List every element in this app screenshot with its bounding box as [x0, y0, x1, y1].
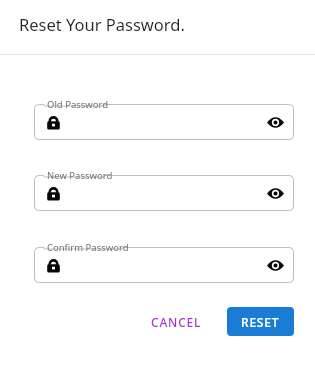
button[interactable]: New Password [34, 175, 294, 211]
button[interactable]: Toggle password visibility [264, 182, 286, 204]
staticText: Reset Your Password. [19, 13, 185, 35]
staticText: New Password [47, 169, 113, 182]
button[interactable]: Toggle password visibility [264, 254, 286, 276]
button[interactable]: Toggle password visibility [264, 111, 286, 133]
other: Password [43, 255, 63, 275]
staticText: CANCEL [151, 314, 202, 330]
other: Password [43, 112, 63, 132]
other: Password [43, 183, 63, 203]
button[interactable]: Confirm Password [34, 247, 294, 283]
staticText: RESET [241, 314, 280, 330]
button[interactable]: RESET [227, 307, 294, 336]
button[interactable]: Old Password [34, 104, 294, 140]
staticText: Old Password [47, 98, 109, 111]
staticText: Confirm Password [47, 241, 129, 254]
button[interactable]: CANCEL [142, 308, 211, 336]
